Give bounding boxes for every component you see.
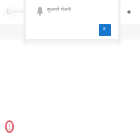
button[interactable] [3, 7, 25, 17]
button[interactable]: More options [123, 6, 135, 18]
staticText: सूचनाएँ भेजनी [47, 6, 71, 12]
button[interactable] [99, 24, 111, 36]
button[interactable]: Alert [4, 119, 15, 134]
